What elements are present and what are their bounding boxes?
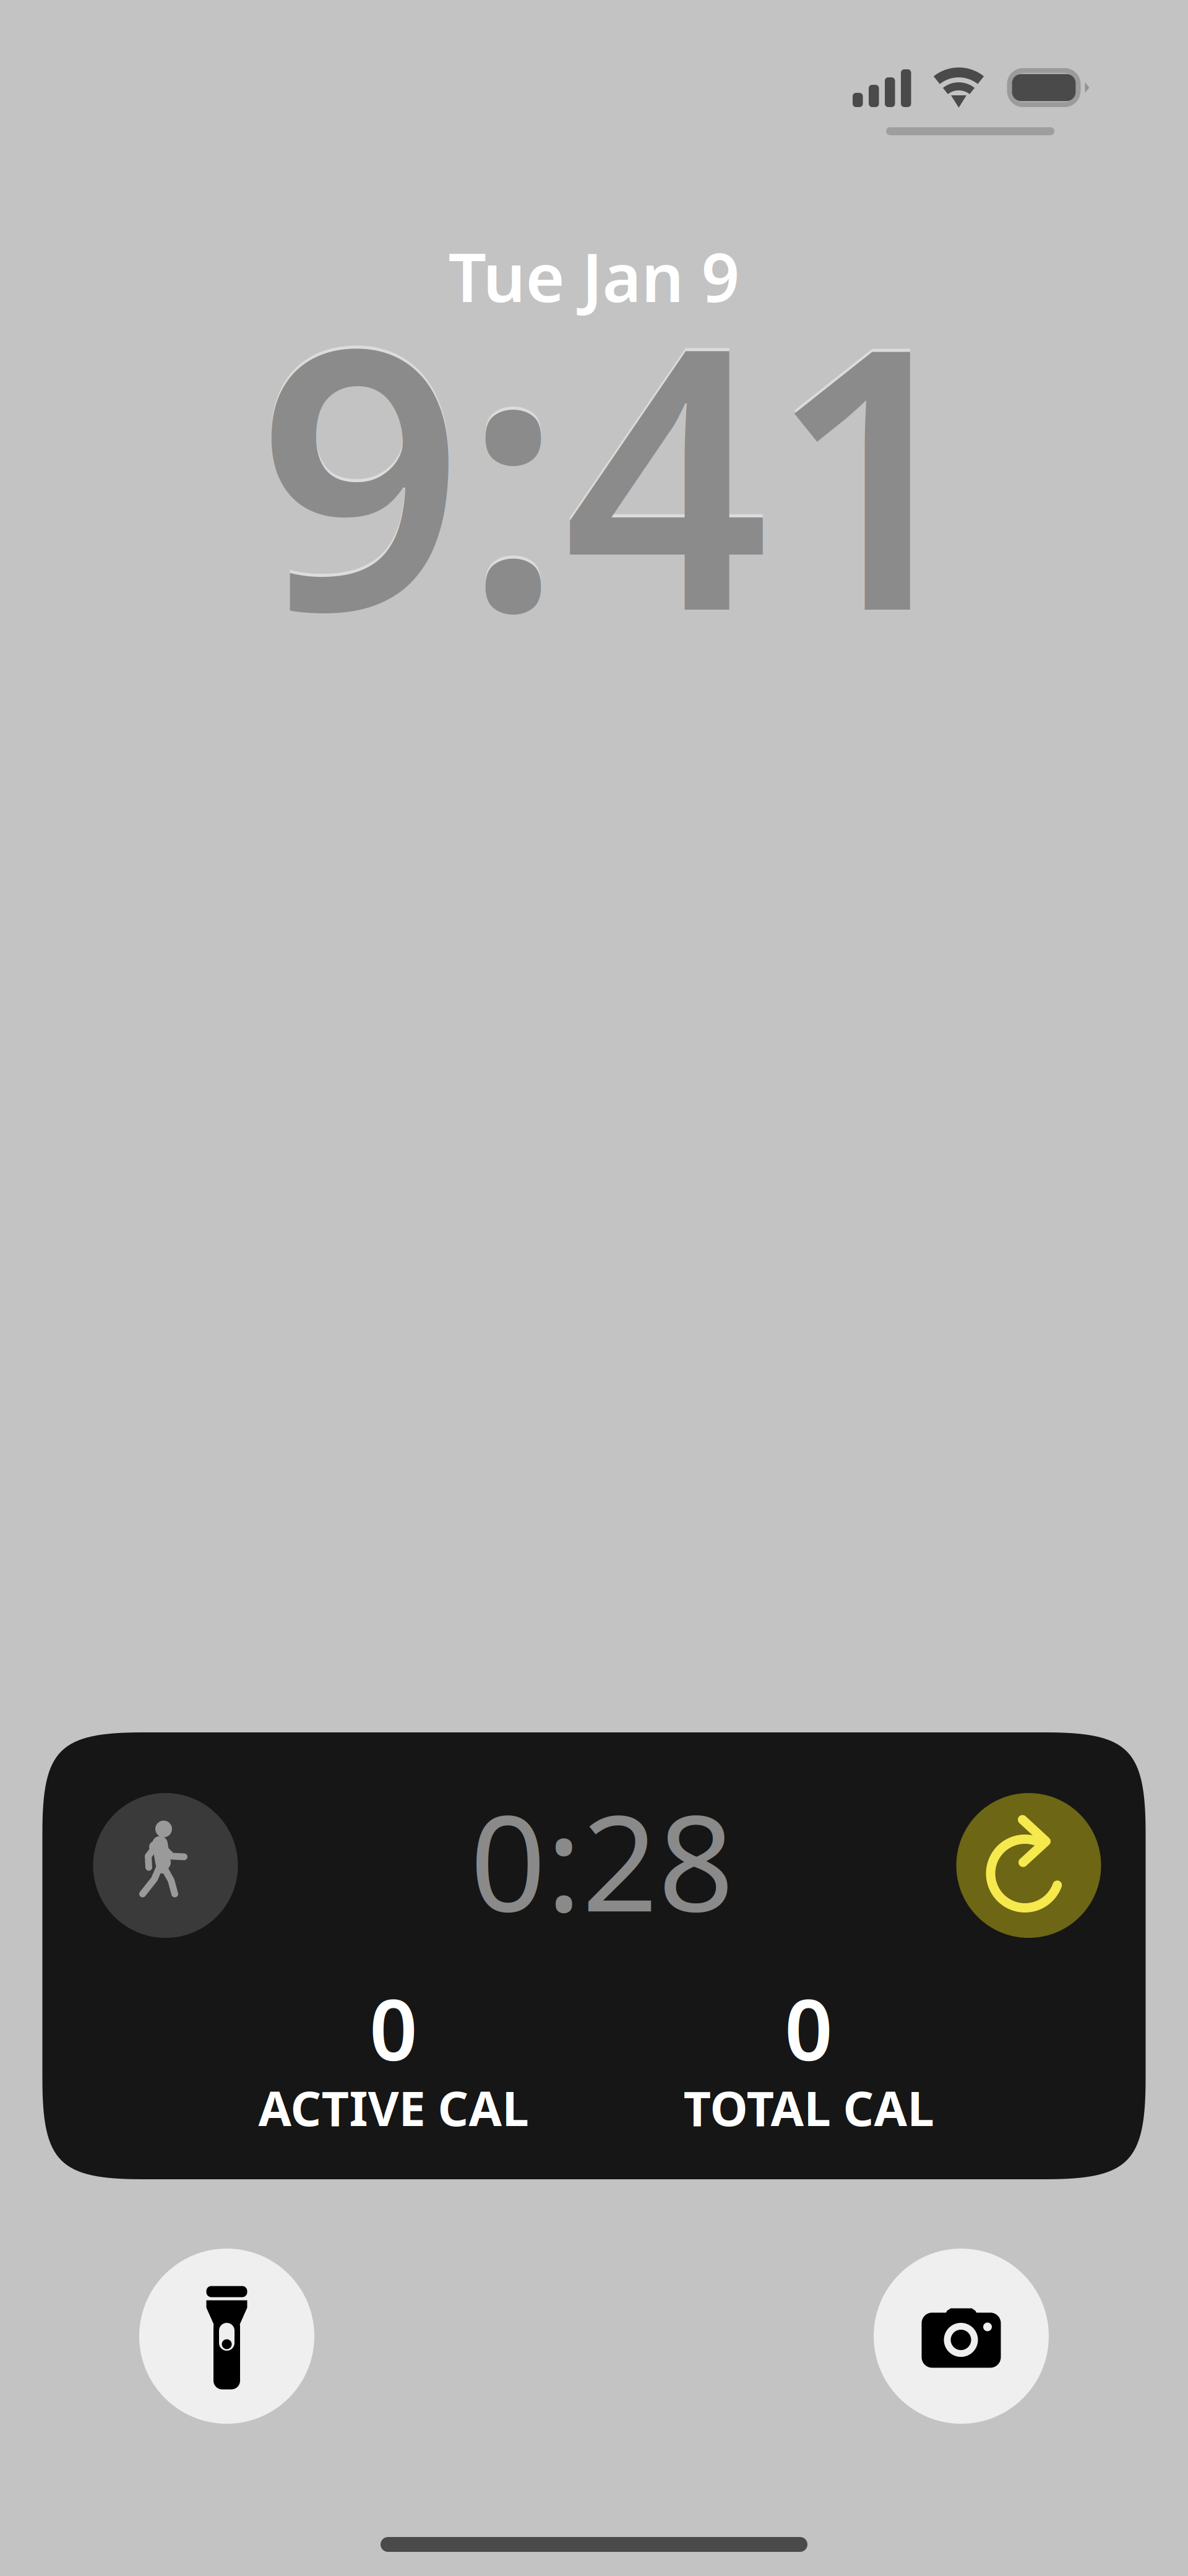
staticText: ACTIVE CAL: [258, 2076, 529, 2139]
staticText: Tue Jan 9: [448, 232, 740, 320]
button[interactable]: Resume workout: [956, 1793, 1101, 1938]
button[interactable]: Camera: [874, 2249, 1049, 2424]
staticText: TOTAL CAL: [683, 2076, 934, 2139]
button[interactable]: 0:28: [42, 1732, 1146, 2179]
staticText: 9:41: [257, 227, 975, 706]
staticText: 0: [369, 1972, 418, 2084]
staticText: 0:28: [470, 1772, 734, 1948]
button[interactable]: Outdoor walk: [93, 1793, 238, 1938]
staticText: 0: [785, 1972, 833, 2084]
staticText: 9:41: [257, 230, 975, 709]
button[interactable]: Flashlight: [139, 2249, 314, 2424]
